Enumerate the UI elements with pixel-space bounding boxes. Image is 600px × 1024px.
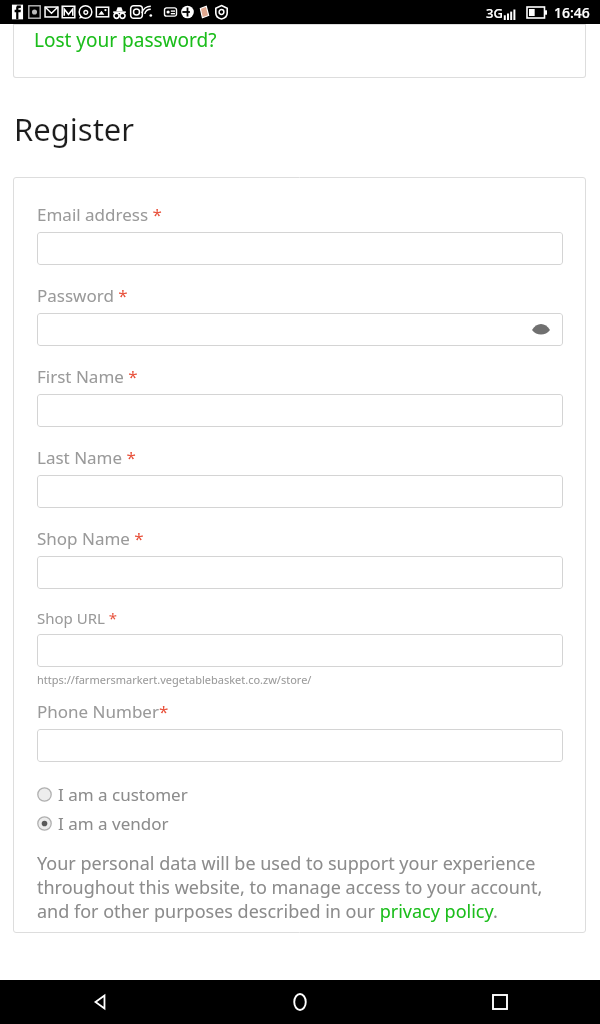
button[interactable]: Back bbox=[78, 980, 122, 1024]
staticText: I am a vendor bbox=[58, 812, 169, 835]
staticText: 16:46 bbox=[554, 3, 590, 22]
button[interactable]: Show password bbox=[530, 322, 552, 338]
staticText: Password * bbox=[37, 284, 128, 307]
button[interactable] bbox=[37, 634, 563, 667]
button[interactable]: Recent apps bbox=[478, 980, 522, 1024]
button[interactable]: Your personal data will be used to suppo… bbox=[37, 851, 563, 923]
button[interactable]: I am a vendor bbox=[37, 812, 563, 835]
staticText: Phone Number* bbox=[37, 700, 169, 723]
button[interactable] bbox=[37, 394, 563, 427]
staticText: Lost your password? bbox=[34, 27, 217, 53]
button[interactable] bbox=[37, 475, 563, 508]
button[interactable]: Home bbox=[278, 980, 322, 1024]
staticText: Email address * bbox=[37, 203, 162, 226]
staticText: Register bbox=[14, 108, 135, 150]
button[interactable] bbox=[37, 232, 563, 265]
staticText: 3G bbox=[486, 4, 503, 22]
staticText: https://farmersmarkert.vegetablebasket.c… bbox=[37, 672, 312, 687]
button[interactable] bbox=[37, 556, 563, 589]
staticText: Shop URL * bbox=[37, 608, 118, 628]
button[interactable] bbox=[37, 729, 563, 762]
button[interactable]: Lost your password? bbox=[34, 27, 217, 53]
staticText: Your personal data will be used to suppo… bbox=[37, 851, 563, 923]
staticText: Shop Name * bbox=[37, 527, 144, 550]
button[interactable]: Show password bbox=[37, 313, 563, 346]
button[interactable]: I am a customer bbox=[37, 783, 563, 806]
staticText: I am a customer bbox=[58, 783, 188, 806]
staticText: Last Name * bbox=[37, 446, 136, 469]
staticText: First Name * bbox=[37, 365, 138, 388]
